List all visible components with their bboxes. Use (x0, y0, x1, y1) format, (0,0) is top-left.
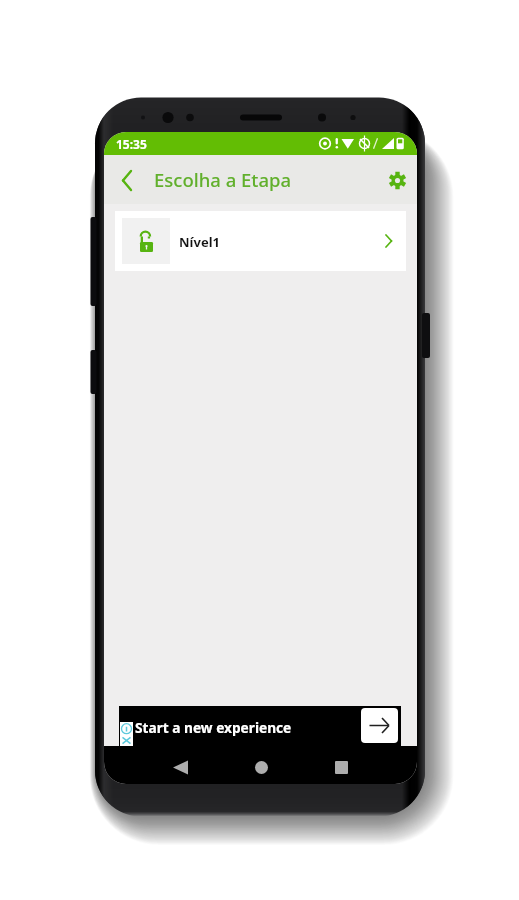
button[interactable]: Recents (324, 750, 358, 784)
button[interactable]: Start a new experience (119, 706, 401, 746)
staticText: Nível1 (179, 233, 220, 251)
button[interactable]: Settings (377, 160, 417, 200)
button[interactable]: Back (163, 750, 197, 784)
button[interactable]: Nível1 (115, 211, 406, 271)
staticText: 15:35 (116, 136, 147, 152)
button[interactable]: Home (244, 750, 278, 784)
staticText: Escolha a Etapa (154, 167, 292, 192)
staticText: Start a new experience (135, 718, 292, 737)
button[interactable]: Back (107, 160, 147, 200)
button[interactable]: Open ad (361, 708, 398, 743)
